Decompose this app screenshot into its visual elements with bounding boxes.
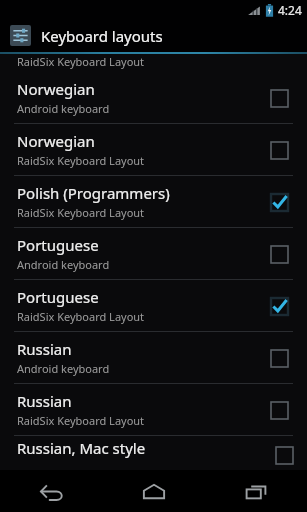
button[interactable]: Checked: [265, 292, 293, 320]
button[interactable]: Norwegian: [0, 124, 307, 175]
staticText: Portuguese: [17, 235, 99, 255]
staticText: Norwegian: [17, 131, 95, 151]
button[interactable]: Russian: [0, 332, 307, 383]
staticText: Android keyboard: [17, 257, 110, 272]
staticText: Android keyboard: [17, 361, 110, 376]
staticText: Russian: [17, 391, 72, 411]
button[interactable]: Russian: [0, 384, 307, 435]
button[interactable]: Recent apps: [205, 470, 307, 512]
staticText: RaidSix Keyboard Layout: [17, 309, 145, 324]
staticText: RaidSix Keyboard Layout: [17, 54, 145, 69]
button[interactable]: Norwegian: [0, 72, 307, 123]
button[interactable]: Portuguese: [0, 228, 307, 279]
button[interactable]: Back: [0, 470, 103, 512]
button[interactable]: Unchecked: [265, 136, 293, 164]
button[interactable]: Unchecked: [265, 396, 293, 424]
staticText: Polish (Programmers): [17, 183, 170, 203]
button[interactable]: Unchecked: [265, 84, 293, 112]
staticText: Android keyboard: [17, 101, 110, 116]
staticText: Russian: [17, 339, 72, 359]
staticText: RaidSix Keyboard Layout: [17, 205, 145, 220]
button[interactable]: Polish (Programmers): [0, 176, 307, 227]
button[interactable]: Checked: [265, 188, 293, 216]
button[interactable]: Home: [103, 470, 205, 512]
staticText: Portuguese: [17, 287, 99, 307]
button[interactable]: Russian, Mac style: [0, 436, 307, 460]
button[interactable]: Unchecked: [265, 240, 293, 268]
staticText: Keyboard layouts: [41, 26, 163, 46]
staticText: 4:24: [278, 2, 302, 18]
button[interactable]: Portuguese: [0, 280, 307, 331]
button[interactable]: Keyboard layouts: [0, 19, 307, 52]
staticText: RaidSix Keyboard Layout: [17, 413, 145, 428]
button[interactable]: RaidSix Keyboard Layout: [0, 54, 307, 72]
button[interactable]: Unchecked: [265, 344, 293, 372]
staticText: Norwegian: [17, 79, 95, 99]
staticText: Russian, Mac style: [17, 438, 268, 458]
staticText: RaidSix Keyboard Layout: [17, 153, 145, 168]
